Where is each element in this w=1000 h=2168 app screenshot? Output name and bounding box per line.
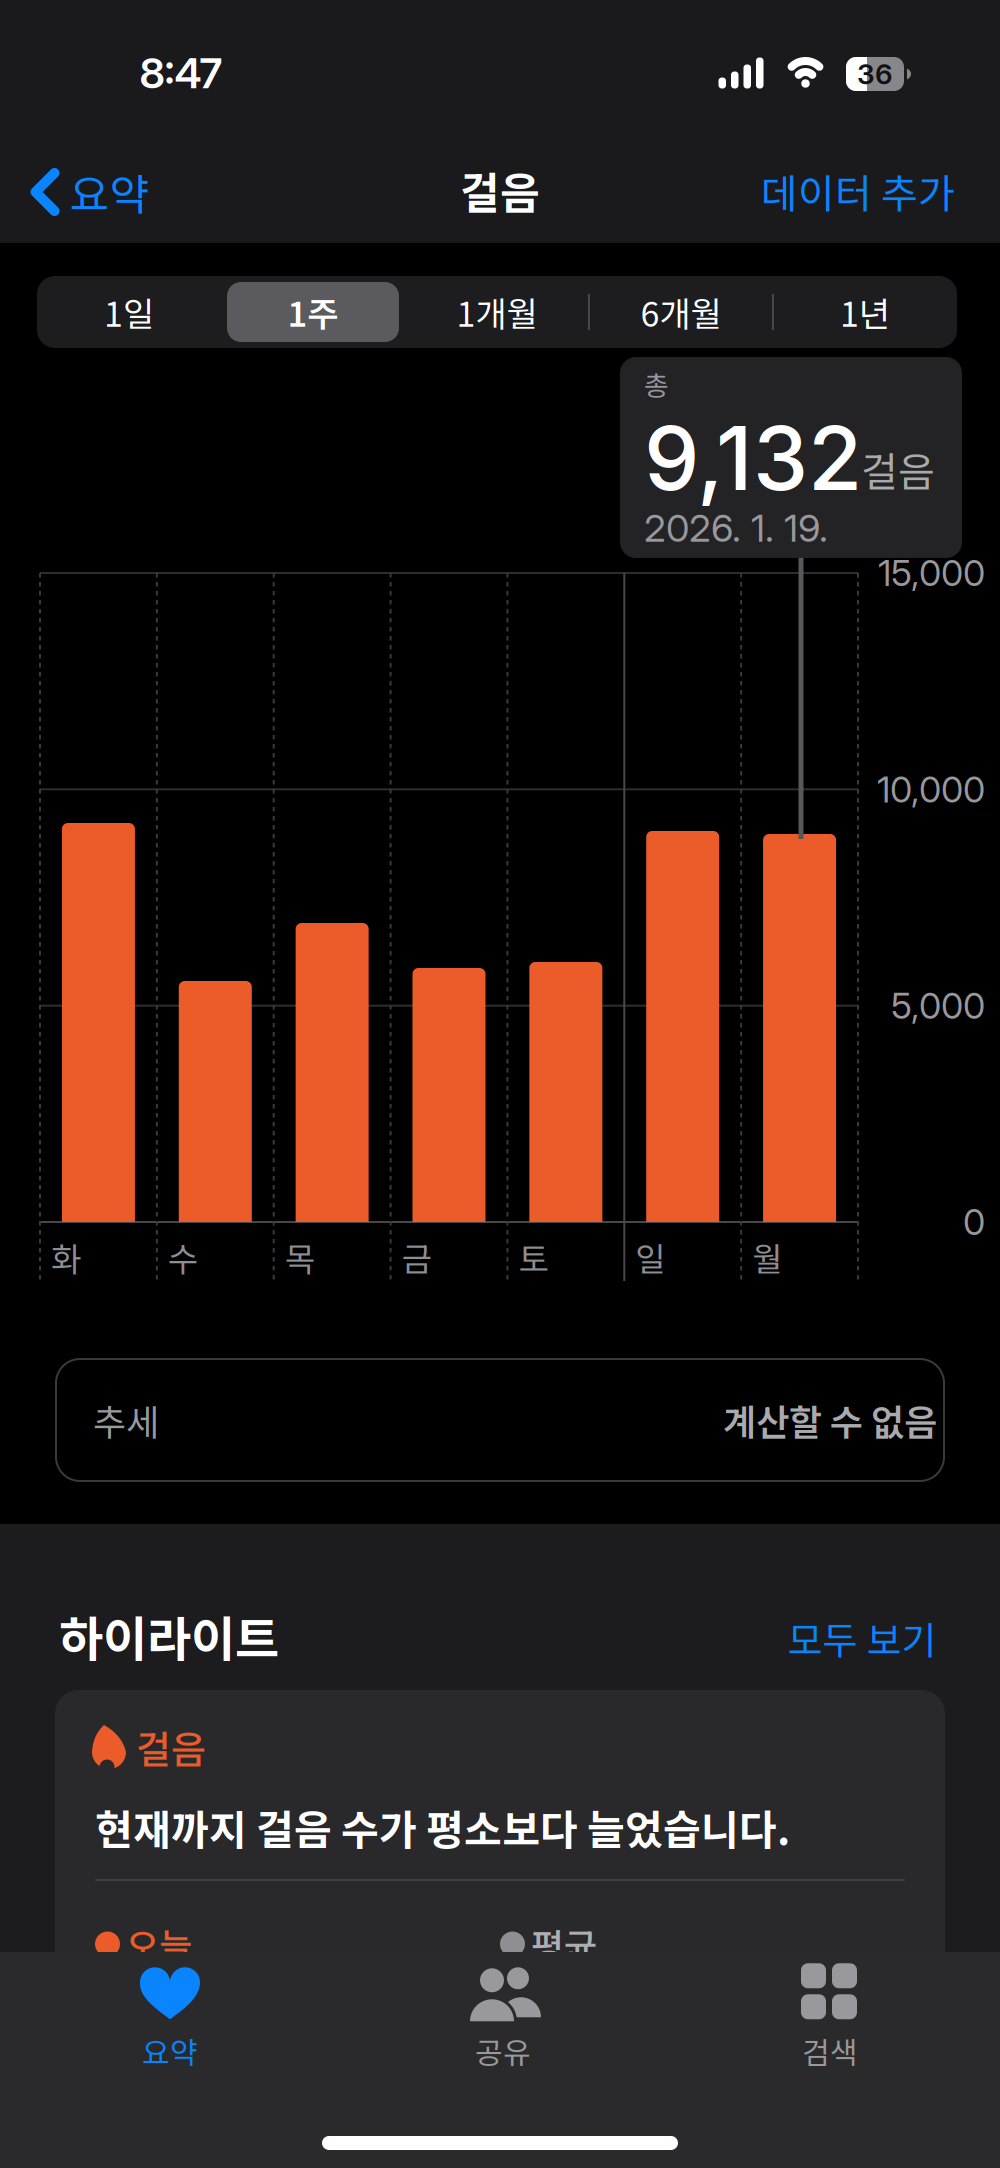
button[interactable]: 데이터 추가	[761, 162, 955, 220]
button[interactable]: 요약	[30, 161, 149, 223]
staticText: 데이터 추가	[761, 162, 955, 220]
button[interactable]: 검색	[710, 1958, 950, 2078]
button[interactable]: 1개월	[405, 276, 589, 348]
staticText: 평균	[531, 1918, 597, 1970]
button[interactable]: 모두 보기	[787, 1610, 936, 1665]
staticText: 0	[963, 1200, 985, 1244]
staticText: 걸음	[460, 159, 540, 221]
staticText: 계산할 수 없음	[723, 1394, 937, 1446]
staticText: 요약	[69, 161, 149, 223]
staticText: 요약	[142, 2029, 198, 2073]
staticText: 1일	[104, 287, 154, 337]
button[interactable]: 1년	[773, 276, 957, 348]
staticText: 현재까지 걸음 수가 평소보다 늘었습니다.	[95, 1797, 790, 1857]
staticText: 8:47	[139, 48, 222, 98]
staticText: 6개월	[640, 287, 721, 337]
staticText: 공유	[475, 2029, 531, 2073]
staticText: 15,000	[878, 551, 985, 595]
button[interactable]: 공유	[383, 1959, 623, 2079]
button[interactable]: 6개월	[589, 276, 773, 348]
staticText: 수	[168, 1233, 198, 1281]
staticText: 9,132	[644, 405, 862, 511]
staticText: 1개월	[456, 287, 537, 337]
button[interactable]: 1일	[37, 276, 221, 348]
staticText: 36	[857, 57, 893, 91]
staticText: 추세	[93, 1394, 159, 1446]
button[interactable]: 1주	[221, 276, 405, 348]
staticText: 걸음	[136, 1719, 206, 1774]
staticText: 금	[402, 1233, 432, 1281]
staticText: 화	[51, 1233, 81, 1281]
button[interactable]: 추세	[55, 1358, 945, 1482]
staticText: 토	[518, 1233, 548, 1281]
staticText: 5,000	[891, 984, 985, 1027]
staticText: 총	[644, 364, 669, 404]
staticText: 1주	[287, 287, 338, 337]
staticText: 검색	[802, 2029, 858, 2073]
staticText: 오늘	[126, 1918, 192, 1970]
staticText: 하이라이트	[59, 1601, 279, 1671]
staticText: 1년	[840, 287, 890, 337]
staticText: 2026. 1. 19.	[644, 505, 828, 551]
staticText: 일	[635, 1233, 665, 1281]
staticText: 모두 보기	[787, 1610, 936, 1665]
staticText: 목	[285, 1233, 315, 1281]
button[interactable]: 요약	[50, 1960, 290, 2080]
staticText: 10,000	[877, 768, 985, 811]
button[interactable]: 걸음	[55, 1690, 945, 2168]
staticText: 월	[752, 1233, 782, 1281]
staticText: 걸음	[861, 440, 935, 498]
